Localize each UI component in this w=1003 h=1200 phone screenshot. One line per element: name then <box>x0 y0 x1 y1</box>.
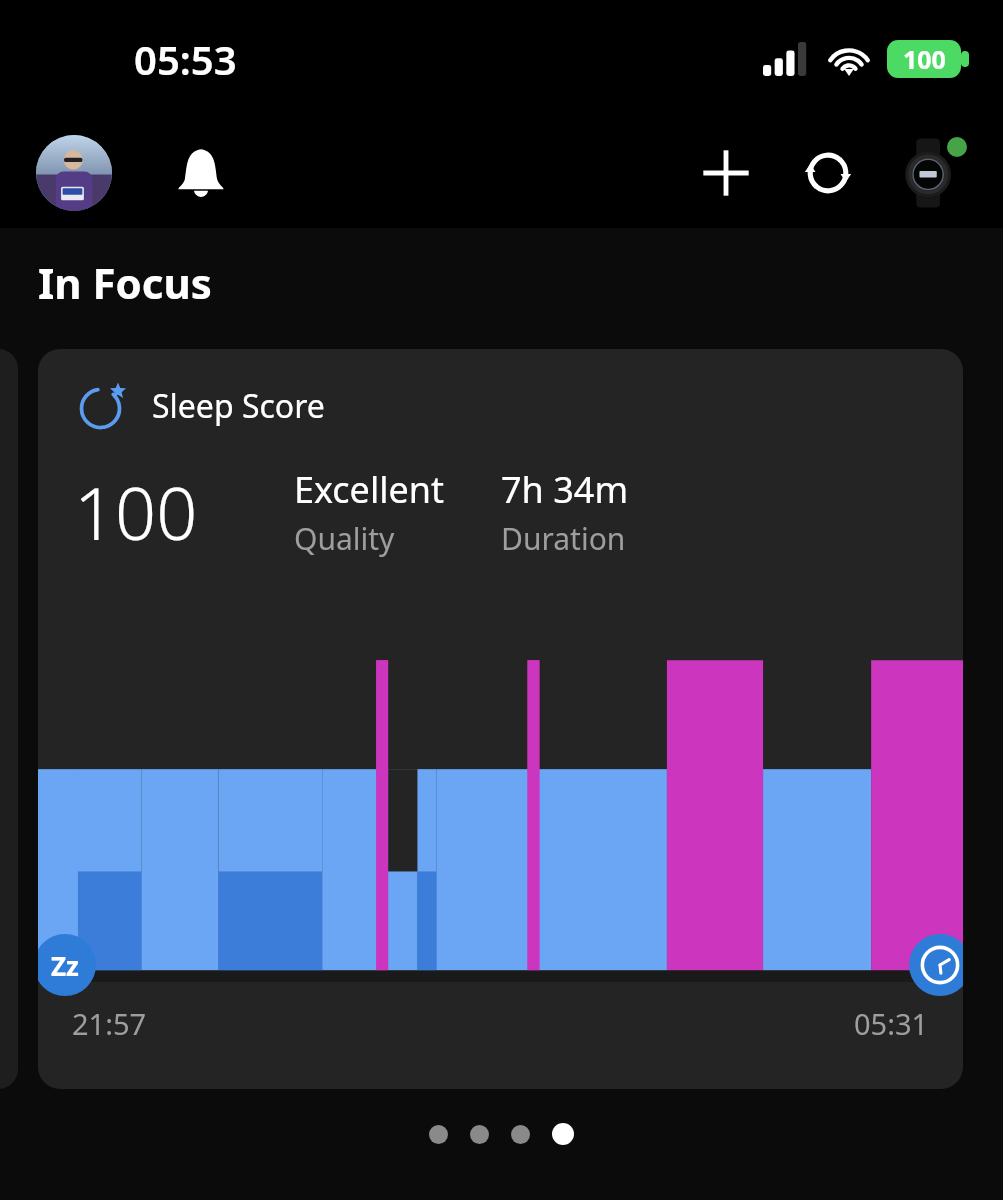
button[interactable]: Add <box>693 140 759 206</box>
staticText: 05:31 <box>854 1004 929 1043</box>
staticText: 100 <box>903 42 946 76</box>
button[interactable]: Profile <box>36 135 112 211</box>
staticText: Zz <box>51 948 79 983</box>
button[interactable]: Wake time <box>909 934 963 996</box>
staticText: Duration <box>501 518 626 559</box>
button[interactable]: Sleep start <box>38 934 96 996</box>
staticText: Quality <box>294 518 395 559</box>
button[interactable]: Notifications <box>168 140 234 206</box>
staticText: Excellent <box>294 465 445 514</box>
button[interactable] <box>511 1125 530 1144</box>
staticText: 100 <box>74 463 198 561</box>
staticText: 05:53 <box>134 32 237 86</box>
button[interactable] <box>552 1123 574 1145</box>
staticText: Sleep Score <box>152 384 325 428</box>
staticText: 21:57 <box>72 1004 147 1043</box>
button[interactable]: Sleep Score <box>38 349 963 1089</box>
staticText: 7h 34m <box>501 465 629 514</box>
button[interactable]: Watch <box>895 137 967 209</box>
button[interactable] <box>429 1125 448 1144</box>
staticText: In Focus <box>38 254 212 311</box>
button[interactable]: Sync <box>795 140 861 206</box>
button[interactable] <box>470 1125 489 1144</box>
